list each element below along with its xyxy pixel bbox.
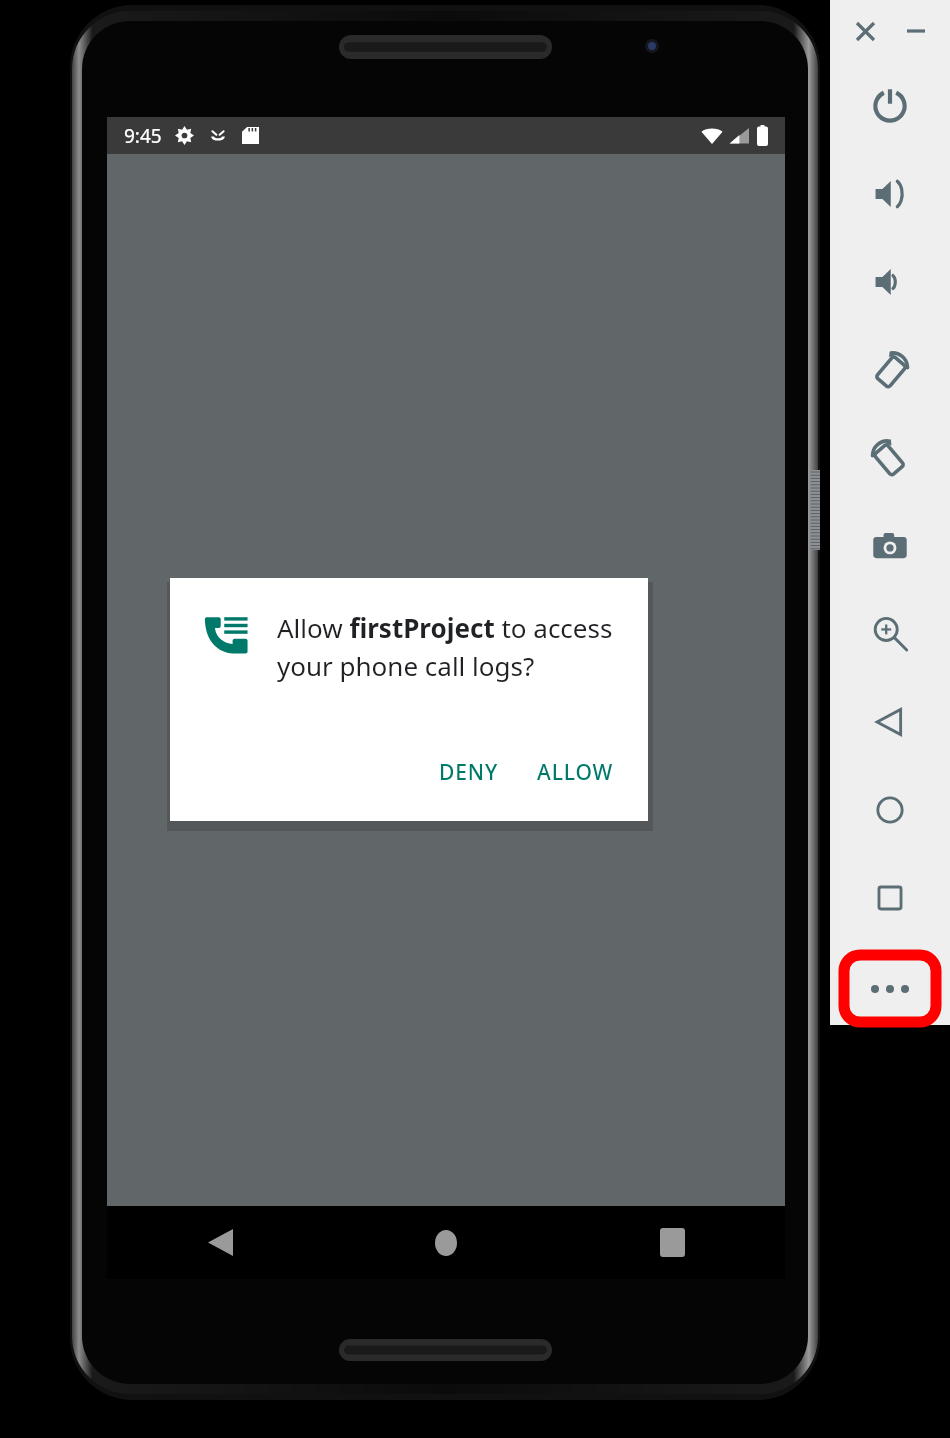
staticText: 9:45: [124, 123, 162, 149]
staticText: DENY: [439, 758, 499, 787]
button[interactable]: DENY: [427, 750, 511, 795]
button[interactable]: Recent apps: [559, 1206, 785, 1279]
button[interactable]: Close: [848, 14, 882, 48]
button[interactable]: Power: [841, 62, 939, 150]
button[interactable]: Volume up: [841, 150, 939, 238]
staticText: Allow firstProject to access your phone …: [277, 610, 618, 683]
button[interactable]: ALLOW: [525, 750, 626, 795]
button[interactable]: Volume down: [841, 238, 939, 326]
button[interactable]: Rotate left: [841, 326, 939, 414]
button[interactable]: Overview: [841, 854, 939, 942]
staticText: ALLOW: [537, 758, 614, 787]
button[interactable]: Back: [841, 678, 939, 766]
button[interactable]: Take screenshot: [841, 502, 939, 590]
button[interactable]: Home: [333, 1206, 559, 1279]
button[interactable]: Minimize: [899, 14, 933, 48]
button[interactable]: More options: [852, 957, 928, 1021]
button[interactable]: Zoom: [841, 590, 939, 678]
button[interactable]: Back: [107, 1206, 333, 1279]
button[interactable]: Home: [841, 766, 939, 854]
button[interactable]: Rotate right: [841, 414, 939, 502]
